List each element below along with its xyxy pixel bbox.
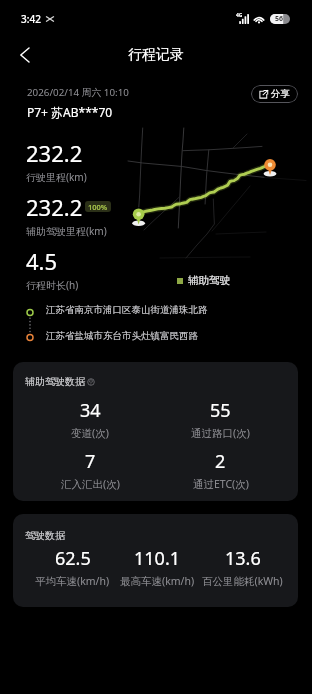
staticText: 7: [85, 449, 96, 474]
staticText: 通过路口(次): [191, 426, 250, 440]
staticText: 4.5: [26, 246, 58, 276]
staticText: 232.2: [26, 192, 83, 222]
staticText: P7+ 苏AB***70: [27, 104, 113, 120]
staticText: 13.6: [225, 546, 261, 571]
staticText: 行程时长(h): [26, 278, 79, 292]
staticText: 江苏省盐城市东台市头灶镇富民西路: [46, 330, 198, 342]
button[interactable]: Trip route map: [132, 130, 308, 250]
button[interactable]: About assisted driving data: [87, 378, 95, 386]
button[interactable]: 分享: [251, 85, 298, 103]
staticText: 56: [275, 14, 284, 24]
staticText: 232.2: [26, 138, 83, 168]
staticText: 辅助驾驶: [188, 274, 230, 287]
staticText: 平均车速(km/h): [35, 574, 110, 588]
staticText: 2: [215, 449, 226, 474]
staticText: 驾驶数据: [25, 529, 65, 542]
staticText: 百公里能耗(kWh): [202, 574, 283, 588]
staticText: 行程记录: [128, 46, 184, 64]
staticText: 行驶里程(km): [26, 170, 87, 184]
staticText: 100%: [88, 202, 108, 212]
staticText: 4G: [236, 12, 243, 19]
staticText: 55: [210, 398, 231, 423]
staticText: 34: [80, 398, 101, 423]
staticText: 江苏省南京市浦口区泰山街道浦珠北路: [46, 304, 208, 316]
staticText: 最高车速(km/h): [120, 574, 195, 588]
staticText: 62.5: [55, 546, 91, 571]
staticText: 通过ETC(次): [193, 477, 249, 491]
staticText: 汇入汇出(次): [61, 477, 120, 491]
button[interactable]: 江苏省盐城市东台市头灶镇富民西路: [46, 330, 198, 342]
staticText: 辅助驾驶数据: [25, 375, 85, 388]
staticText: 变道(次): [71, 426, 109, 440]
staticText: 2026/02/14 周六 10:10: [27, 86, 129, 99]
staticText: 110.1: [134, 546, 181, 571]
staticText: 辅助驾驶里程(km): [26, 224, 107, 238]
button[interactable]: Back: [9, 40, 39, 70]
staticText: 分享: [271, 88, 290, 100]
staticText: 3:42: [21, 12, 41, 26]
button[interactable]: 江苏省南京市浦口区泰山街道浦珠北路: [46, 304, 208, 316]
